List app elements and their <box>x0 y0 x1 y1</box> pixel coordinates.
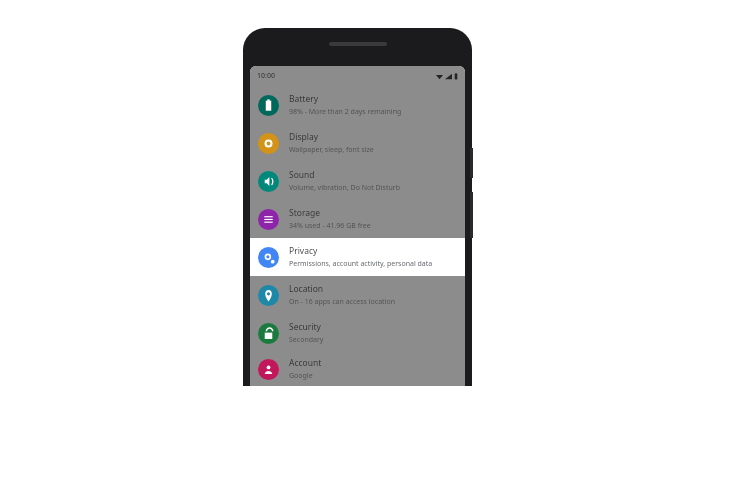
button[interactable]: Privacy <box>250 238 465 276</box>
staticText: Permissions, account activity, personal … <box>289 259 433 269</box>
button[interactable]: Sound <box>250 162 465 200</box>
button[interactable]: Battery <box>250 86 465 124</box>
staticText: Wallpaper, sleep, font size <box>289 145 374 155</box>
staticText: Battery <box>289 93 319 105</box>
staticText: Account <box>289 357 322 369</box>
button[interactable]: Account <box>250 352 465 386</box>
staticText: 34% used - 41.96 GB free <box>289 221 371 231</box>
staticText: Volume, vibration, Do Not Disturb <box>289 183 400 193</box>
staticText: 98% - More than 2 days remaining <box>289 107 402 117</box>
staticText: Location <box>289 283 324 295</box>
button[interactable]: Storage <box>250 200 465 238</box>
staticText: Storage <box>289 207 321 219</box>
staticText: Sound <box>289 169 315 181</box>
staticText: On - 16 apps can access location <box>289 297 396 307</box>
staticText: Display <box>289 131 318 143</box>
button[interactable]: Display <box>250 124 465 162</box>
staticText: 10:00 <box>257 71 275 81</box>
staticText: Secondary <box>289 335 324 345</box>
button[interactable]: Security <box>250 314 465 352</box>
staticText: Google <box>289 371 313 381</box>
staticText: Security <box>289 321 321 333</box>
button[interactable]: Location <box>250 276 465 314</box>
staticText: Privacy <box>289 245 318 257</box>
